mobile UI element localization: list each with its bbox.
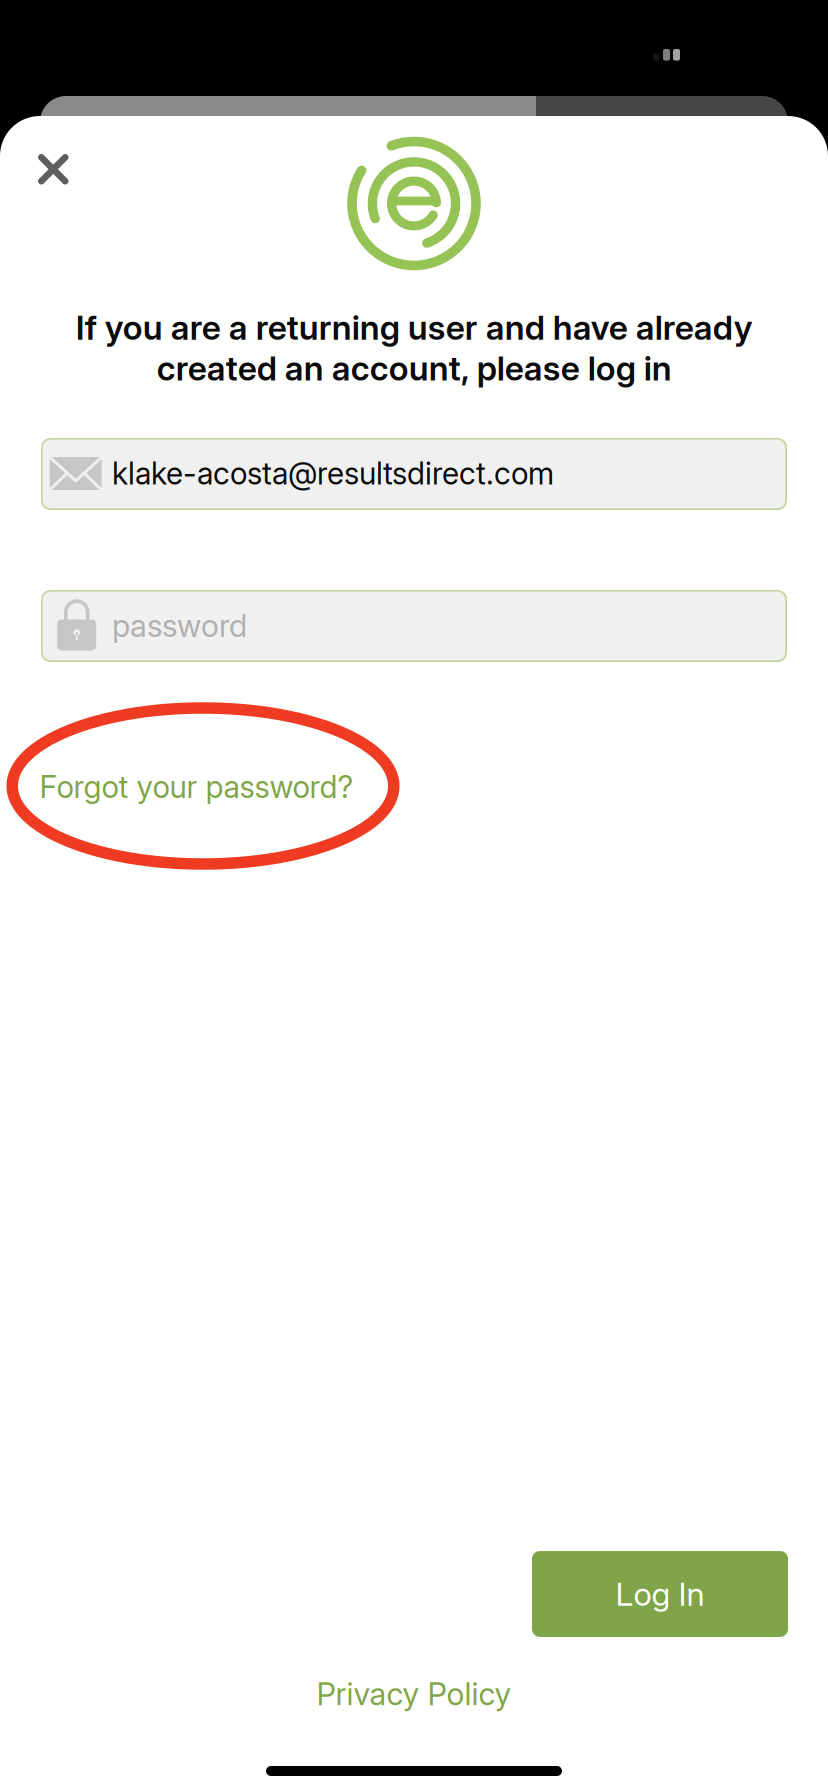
- button[interactable]: Privacy Policy: [0, 1659, 828, 1729]
- button[interactable]: Close: [0, 116, 92, 208]
- button[interactable]: Log In: [532, 1551, 788, 1637]
- staticText: If you are a returning user and have alr…: [75, 307, 752, 389]
- button[interactable]: Forgot your password?: [0, 746, 387, 827]
- staticText: Forgot your password?: [39, 768, 353, 805]
- staticText: klake-acosta@resultsdirect.com: [112, 455, 554, 492]
- staticText: password: [112, 607, 247, 644]
- staticText: Log In: [615, 1575, 704, 1613]
- staticText: Privacy Policy: [316, 1675, 511, 1713]
